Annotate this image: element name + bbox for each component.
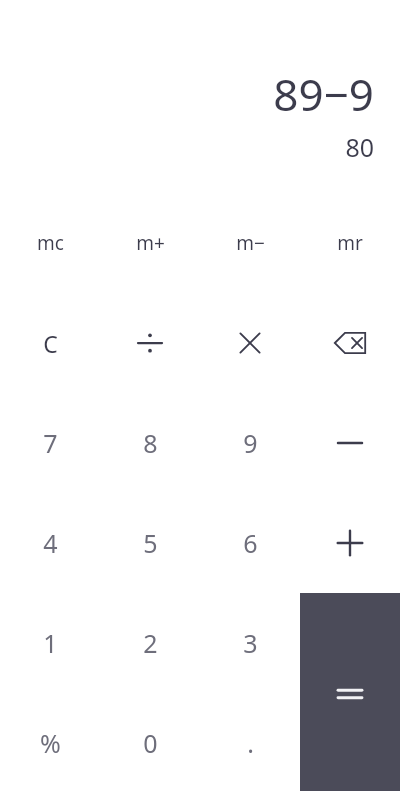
button[interactable]: 8 <box>100 393 200 493</box>
button[interactable]: Minus <box>300 393 400 493</box>
button[interactable]: 7 <box>0 393 100 493</box>
staticText: mr <box>337 230 363 256</box>
staticText: 1 <box>43 626 58 660</box>
staticText: 6 <box>243 526 258 560</box>
button[interactable]: Divide <box>100 293 200 393</box>
staticText: 0 <box>143 726 158 760</box>
button[interactable]: 0 <box>100 693 200 793</box>
staticText: 80 <box>345 130 374 164</box>
staticText: mc <box>37 230 64 256</box>
button[interactable]: mc <box>0 193 100 293</box>
button[interactable]: % <box>0 693 100 793</box>
staticText: m+ <box>136 230 165 256</box>
button[interactable]: Plus <box>300 493 400 593</box>
staticText: 8 <box>143 426 158 460</box>
button[interactable]: C <box>0 293 100 393</box>
staticText: % <box>40 726 61 760</box>
button[interactable] <box>300 593 400 791</box>
staticText: 4 <box>43 526 58 560</box>
staticText: 7 <box>43 426 58 460</box>
button[interactable]: 5 <box>100 493 200 593</box>
button[interactable]: m+ <box>100 193 200 293</box>
button[interactable]: 6 <box>200 493 300 593</box>
button[interactable]: 2 <box>100 593 200 693</box>
staticText: m− <box>236 230 265 256</box>
staticText: 9 <box>243 426 258 460</box>
staticText: 5 <box>143 526 158 560</box>
button[interactable]: 4 <box>0 493 100 593</box>
button[interactable]: Backspace <box>300 293 400 393</box>
staticText: 2 <box>143 626 158 660</box>
button[interactable]: 3 <box>200 593 300 693</box>
staticText: C <box>43 328 58 359</box>
button[interactable]: Multiply <box>200 293 300 393</box>
button[interactable]: 9 <box>200 393 300 493</box>
staticText: 89−9 <box>273 64 374 124</box>
staticText: . <box>247 726 254 760</box>
staticText: 3 <box>243 626 258 660</box>
button[interactable]: 1 <box>0 593 100 693</box>
button[interactable]: . <box>200 693 300 793</box>
button[interactable]: mr <box>300 193 400 293</box>
button[interactable]: m− <box>200 193 300 293</box>
